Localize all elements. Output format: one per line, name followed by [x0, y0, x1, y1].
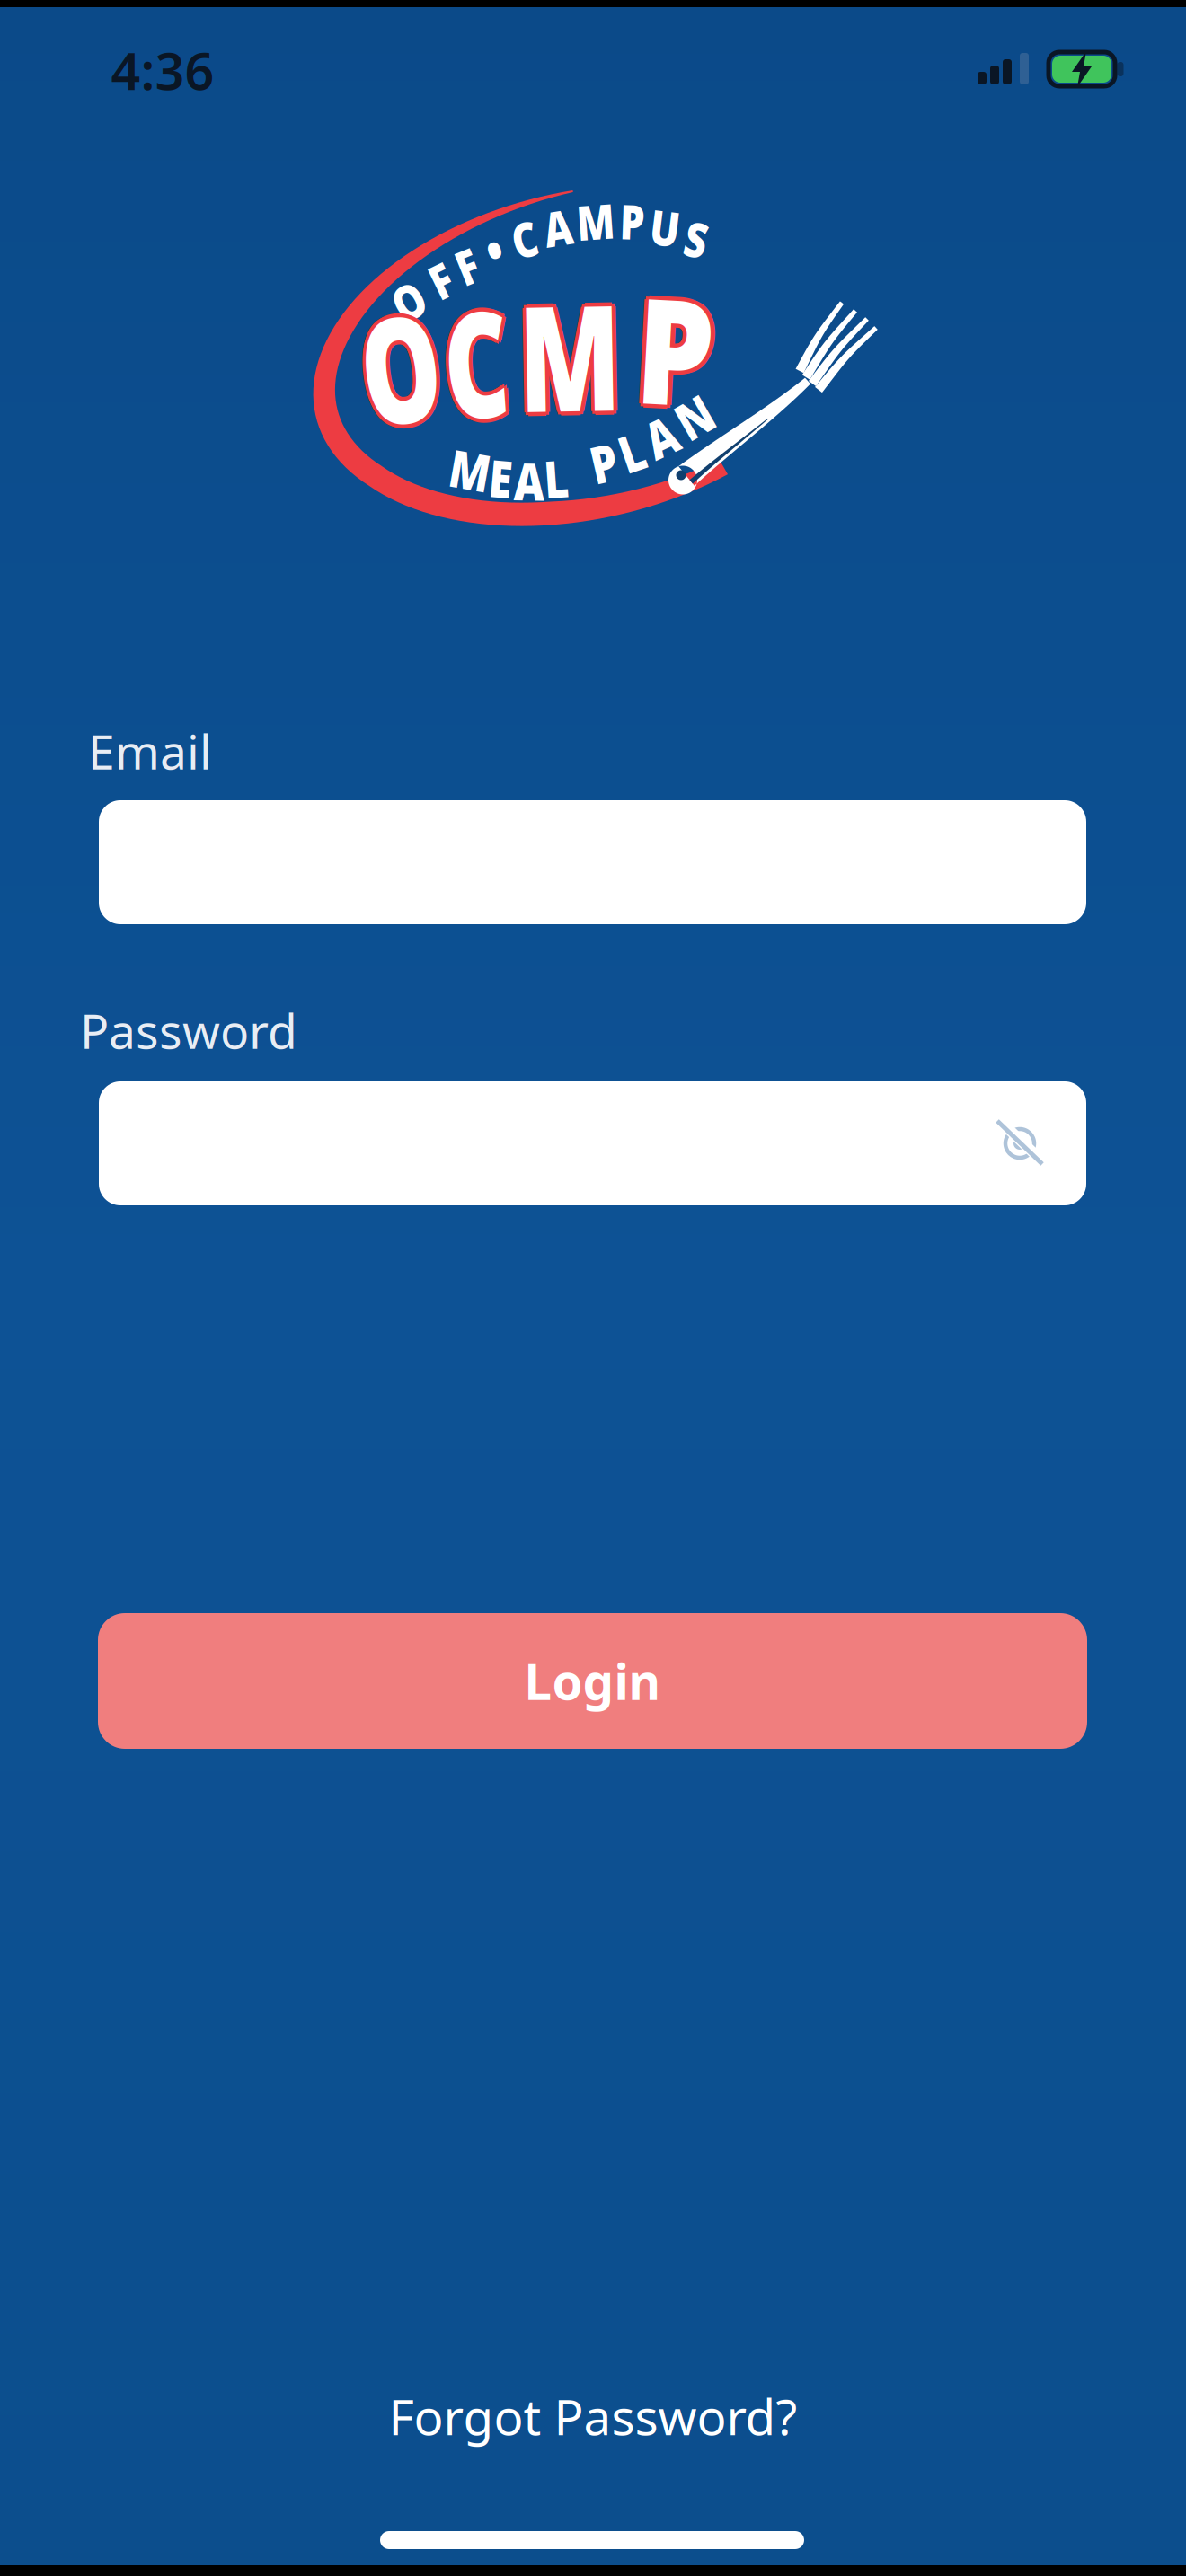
staticText: C	[429, 264, 524, 458]
staticText: O	[339, 272, 455, 466]
staticText: M	[572, 189, 619, 253]
staticText: Forgot Password?	[389, 2384, 797, 2449]
staticText: C	[423, 264, 518, 458]
staticText: P	[635, 251, 727, 446]
staticText: P	[617, 189, 648, 253]
staticText: M	[504, 258, 646, 452]
staticText: O	[337, 269, 454, 463]
button[interactable]: Forgot Password?	[389, 2384, 797, 2449]
button[interactable]: Password	[99, 1081, 1086, 1205]
staticText: O	[348, 269, 465, 463]
staticText: C	[509, 207, 540, 271]
staticText: M	[495, 255, 636, 449]
staticText: P	[626, 249, 718, 443]
staticText: M	[499, 258, 640, 452]
staticText: P	[626, 254, 718, 448]
staticText: A	[642, 402, 680, 471]
staticText: U	[647, 195, 683, 259]
staticText: Login	[524, 1648, 661, 1714]
staticText: Password	[80, 998, 297, 1062]
staticText: M	[445, 436, 495, 504]
staticText: P	[588, 428, 620, 497]
staticText: C	[432, 267, 528, 461]
staticText: L	[617, 418, 646, 486]
staticText: M	[499, 262, 640, 456]
staticText: •	[485, 218, 504, 281]
staticText: C	[425, 261, 520, 455]
staticText: C	[429, 268, 524, 462]
staticText: N	[673, 383, 716, 451]
staticText: O	[342, 269, 459, 463]
staticText: O	[339, 267, 455, 461]
staticText: F	[428, 248, 454, 312]
staticText: A	[510, 446, 548, 515]
button[interactable]: Email	[99, 800, 1086, 924]
staticText: C	[429, 260, 524, 454]
staticText: 4:36	[111, 36, 214, 104]
staticText: C	[432, 261, 528, 455]
staticText: A	[540, 195, 575, 259]
staticText: F	[454, 234, 480, 298]
staticText: S	[682, 207, 710, 271]
staticText: O	[346, 272, 463, 466]
button[interactable]: Show password	[988, 1111, 1051, 1174]
staticText: P	[629, 247, 722, 441]
staticText: O	[342, 265, 459, 459]
staticText: M	[503, 261, 644, 455]
staticText: E	[487, 444, 514, 512]
staticText: M	[494, 258, 635, 452]
staticText: M	[499, 254, 640, 448]
staticText: Email	[88, 719, 212, 783]
staticText: P	[633, 249, 726, 443]
staticText: C	[434, 264, 529, 458]
staticText: O	[342, 273, 459, 468]
staticText: P	[629, 256, 722, 450]
staticText: P	[629, 251, 722, 446]
staticText: M	[495, 261, 636, 455]
staticText: O	[389, 269, 428, 333]
staticText: P	[633, 254, 726, 448]
staticText: M	[503, 255, 644, 449]
staticText: L	[541, 444, 571, 512]
staticText: P	[624, 251, 717, 446]
staticText: O	[346, 267, 463, 461]
staticText: C	[425, 267, 520, 461]
button[interactable]: Login	[98, 1613, 1087, 1749]
